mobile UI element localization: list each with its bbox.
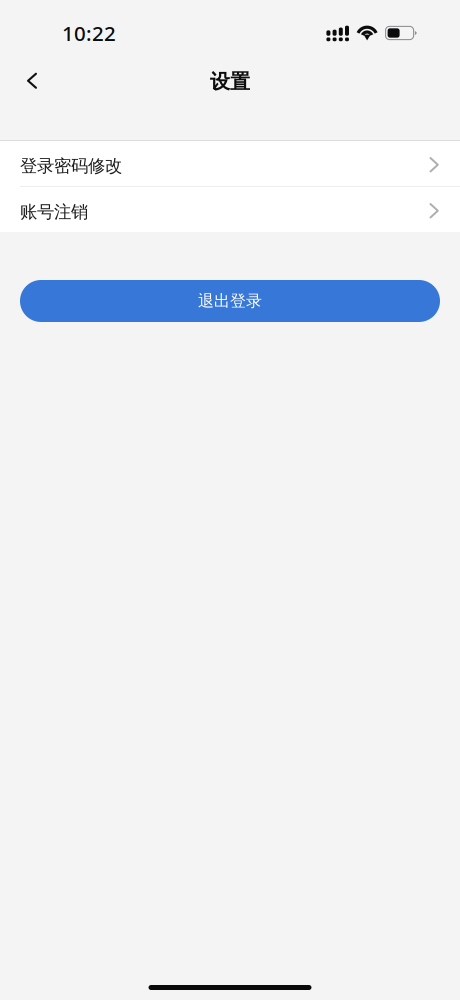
staticText: 登录密码修改 [20, 155, 122, 177]
staticText: 10:22 [62, 19, 116, 47]
staticText: 设置 [210, 69, 250, 94]
staticText: 账号注销 [20, 201, 88, 223]
button[interactable]: 退出登录 [20, 280, 440, 322]
button[interactable]: 账号注销 [0, 187, 460, 232]
staticText: 退出登录 [198, 291, 262, 311]
button[interactable]: 登录密码修改 [0, 141, 460, 186]
button[interactable]: Back [10, 58, 54, 102]
